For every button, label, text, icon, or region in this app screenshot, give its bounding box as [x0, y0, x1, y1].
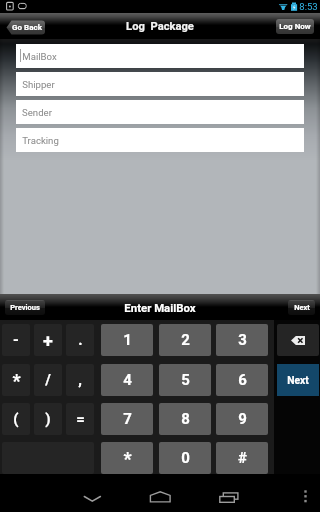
button[interactable]: # [216, 442, 268, 474]
staticText: 2 [181, 331, 190, 349]
staticText: 7 [123, 410, 132, 428]
staticText: 9 [238, 410, 247, 428]
staticText: + [43, 330, 53, 351]
staticText: Log Package [126, 20, 194, 33]
button[interactable]: More options [296, 484, 316, 512]
staticText: Log Now [279, 22, 311, 31]
staticText: Enter MailBox [124, 301, 196, 314]
button[interactable]: * [101, 442, 153, 474]
staticText: 8 [181, 410, 190, 428]
button[interactable]: = [66, 403, 94, 435]
staticText: 1 [123, 331, 132, 349]
button[interactable]: Tracking [16, 128, 304, 152]
button[interactable]: , [66, 364, 94, 396]
staticText: Next [287, 374, 309, 386]
staticText: Shipper [22, 79, 55, 90]
button[interactable]: Shipper [16, 72, 304, 96]
button[interactable]: 3 [216, 324, 268, 356]
staticText: Tracking [22, 135, 59, 146]
button[interactable]: / [34, 364, 62, 396]
staticText: ) [45, 410, 51, 428]
staticText: Go Back [12, 23, 42, 32]
staticText: * [12, 370, 21, 391]
button[interactable]: * [2, 364, 30, 396]
button[interactable]: Sender [16, 100, 304, 124]
button[interactable]: Go Back [6, 20, 45, 35]
button[interactable]: ( [2, 403, 30, 435]
staticText: 3 [238, 331, 247, 349]
button[interactable]: Delete [277, 324, 319, 356]
button[interactable]: + [34, 324, 62, 356]
button[interactable]: - [2, 324, 30, 356]
button[interactable]: 8 [159, 403, 211, 435]
staticText: # [238, 449, 247, 467]
button[interactable]: . [66, 324, 94, 356]
button[interactable]: Recent apps [208, 484, 248, 512]
staticText: 0 [181, 449, 190, 467]
staticText: Next [294, 303, 310, 312]
staticText: * [123, 448, 132, 469]
button[interactable]: Log Now [276, 19, 314, 34]
staticText: Sender [22, 107, 52, 118]
button[interactable]: Next [277, 364, 319, 396]
button[interactable]: Home [140, 484, 180, 512]
button[interactable]: 6 [216, 364, 268, 396]
staticText: 6 [238, 371, 247, 389]
button[interactable]: 5 [159, 364, 211, 396]
staticText: MailBox [22, 51, 57, 62]
staticText: , [78, 371, 82, 389]
staticText: / [45, 371, 51, 389]
button[interactable]: 7 [101, 403, 153, 435]
staticText: 5 [181, 371, 190, 389]
button[interactable]: 1 [101, 324, 153, 356]
button[interactable]: Hide keyboard [72, 484, 112, 512]
button[interactable]: Next [288, 300, 315, 315]
staticText: 4 [123, 371, 132, 389]
button[interactable]: MailBox [16, 44, 304, 68]
button[interactable]: 2 [159, 324, 211, 356]
staticText: . [78, 331, 83, 349]
button[interactable]: 0 [159, 442, 211, 474]
staticText: - [13, 331, 19, 349]
button[interactable]: ) [34, 403, 62, 435]
button[interactable]: Previous [5, 300, 45, 315]
staticText: ( [13, 410, 19, 428]
staticText: 8:53 [299, 1, 318, 12]
button[interactable]: 4 [101, 364, 153, 396]
staticText: Previous [10, 303, 40, 312]
staticText: = [76, 410, 85, 428]
button[interactable]: 9 [216, 403, 268, 435]
